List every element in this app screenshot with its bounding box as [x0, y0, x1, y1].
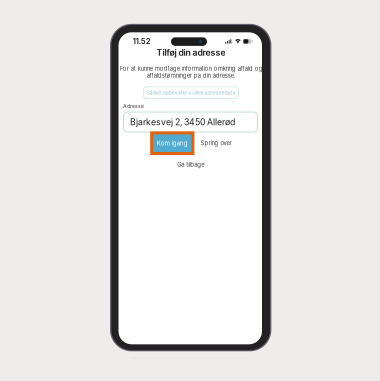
staticText: Sådan opbevarer vi dine adressedata	[146, 89, 235, 96]
staticText: affaldstømninger på din adresse.	[147, 72, 236, 79]
staticText: Kom igang	[157, 140, 188, 147]
staticText: Adresse	[123, 103, 144, 109]
staticText: Gå tilbage	[177, 161, 204, 168]
staticText: 11.52	[133, 37, 151, 46]
button[interactable]: Spring over	[200, 140, 231, 147]
button[interactable]: Kom igang	[150, 131, 194, 155]
staticText: For at kunne modtage information omkring…	[120, 65, 263, 72]
button[interactable]: Sådan opbevarer vi dine adressedata	[143, 87, 238, 98]
staticText: Spring over	[200, 140, 231, 147]
button[interactable]: Gå tilbage	[177, 161, 204, 168]
staticText: Bjarkesvej 2, 3450 Allerød	[130, 117, 235, 127]
staticText: Tilføj din adresse	[156, 47, 225, 58]
